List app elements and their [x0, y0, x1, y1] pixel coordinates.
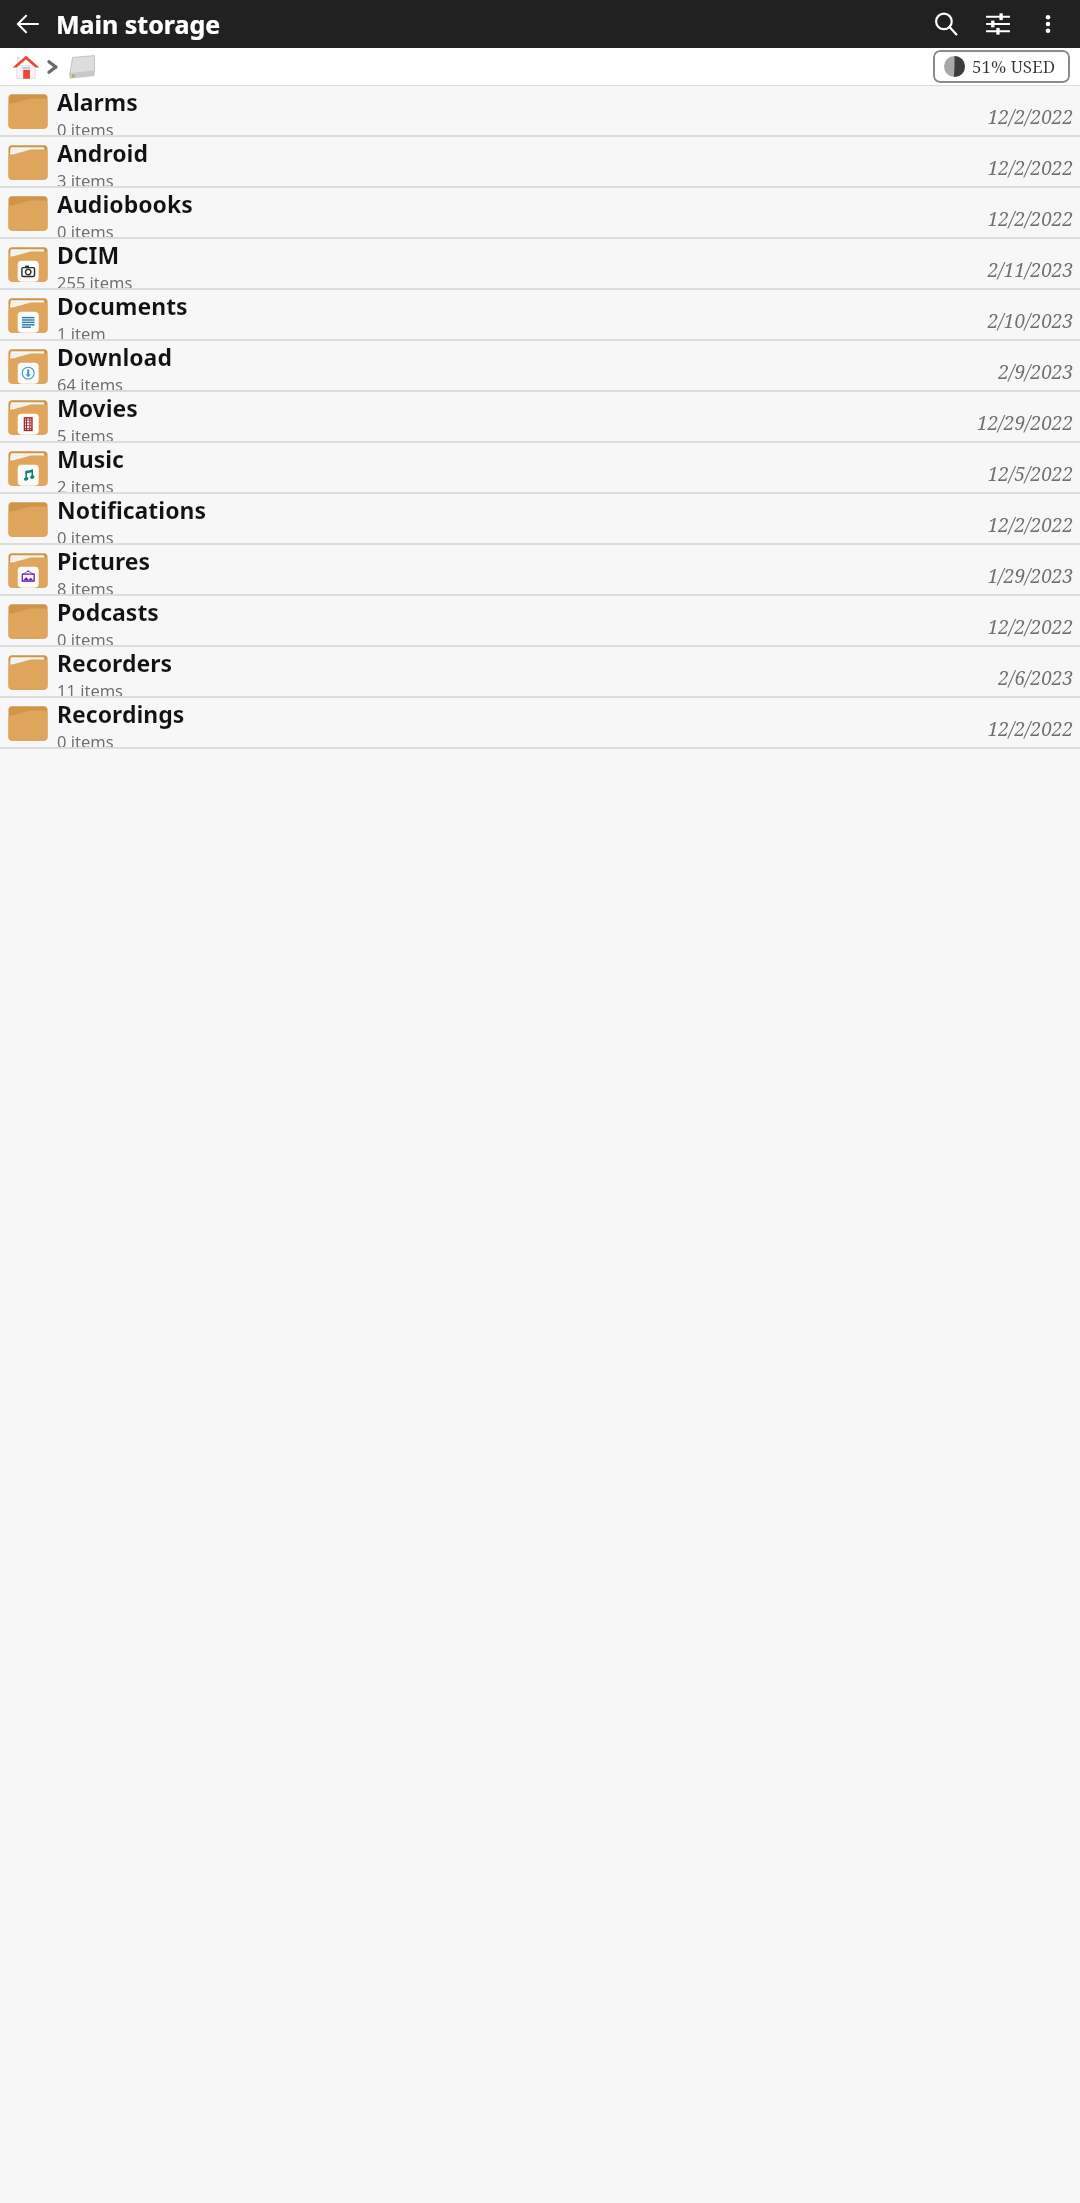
button[interactable]: DCIM — [0, 239, 1080, 288]
staticText: 12/2/2022 — [987, 155, 1073, 181]
button[interactable]: Sort and view options — [972, 0, 1024, 48]
staticText: 12/2/2022 — [987, 104, 1073, 130]
staticText: Movies — [57, 392, 138, 423]
staticText: Audiobooks — [57, 188, 193, 219]
button[interactable]: Recorders — [0, 647, 1080, 696]
button[interactable]: Android — [0, 137, 1080, 186]
staticText: 12/2/2022 — [987, 716, 1073, 742]
staticText: Documents — [57, 290, 188, 321]
staticText: 2/6/2023 — [998, 665, 1073, 691]
staticText: 0 items — [57, 220, 114, 237]
staticText: 2/9/2023 — [998, 359, 1073, 385]
button[interactable]: More options — [1024, 0, 1072, 48]
button[interactable]: Search — [920, 0, 972, 48]
staticText: 12/2/2022 — [987, 206, 1073, 232]
staticText: Download — [57, 341, 172, 372]
staticText: 3 items — [57, 169, 114, 186]
staticText: Recordings — [57, 698, 185, 729]
staticText: 12/2/2022 — [987, 512, 1073, 538]
staticText: 0 items — [57, 730, 114, 747]
button[interactable]: 51% USED — [933, 50, 1070, 83]
button[interactable]: Podcasts — [0, 596, 1080, 645]
staticText: 8 items — [57, 577, 114, 594]
button[interactable]: Pictures — [0, 545, 1080, 594]
staticText: 11 items — [57, 679, 124, 696]
staticText: Android — [57, 137, 149, 168]
button[interactable]: Documents — [0, 290, 1080, 339]
button[interactable]: Notifications — [0, 494, 1080, 543]
staticText: 2 items — [57, 475, 114, 492]
button[interactable]: Back — [4, 0, 52, 48]
staticText: 2/10/2023 — [987, 308, 1073, 334]
staticText: 12/5/2022 — [987, 461, 1073, 487]
staticText: 255 items — [57, 271, 133, 288]
staticText: 0 items — [57, 118, 114, 135]
staticText: 1 item — [57, 322, 106, 339]
button[interactable]: Movies — [0, 392, 1080, 441]
staticText: Music — [57, 443, 124, 474]
staticText: 12/29/2022 — [977, 410, 1073, 436]
staticText: 12/2/2022 — [987, 614, 1073, 640]
staticText: 5 items — [57, 424, 114, 441]
staticText: 0 items — [57, 628, 114, 645]
staticText: Pictures — [57, 545, 151, 576]
button[interactable]: Audiobooks — [0, 188, 1080, 237]
staticText: 51% USED — [972, 55, 1056, 78]
button[interactable]: Recordings — [0, 698, 1080, 747]
button[interactable]: Home — [12, 53, 40, 81]
staticText: Alarms — [57, 86, 138, 117]
staticText: Recorders — [57, 647, 172, 678]
button[interactable]: Download — [0, 341, 1080, 390]
button[interactable]: Music — [0, 443, 1080, 492]
staticText: 1/29/2023 — [987, 563, 1073, 589]
staticText: 2/11/2023 — [987, 257, 1073, 283]
staticText: 64 items — [57, 373, 124, 390]
staticText: Podcasts — [57, 596, 159, 627]
staticText: 0 items — [57, 526, 114, 543]
button[interactable]: Main storage — [66, 52, 96, 82]
staticText: Notifications — [57, 494, 207, 525]
staticText: Main storage — [56, 7, 221, 41]
button[interactable]: Alarms — [0, 86, 1080, 135]
staticText: DCIM — [57, 239, 120, 270]
